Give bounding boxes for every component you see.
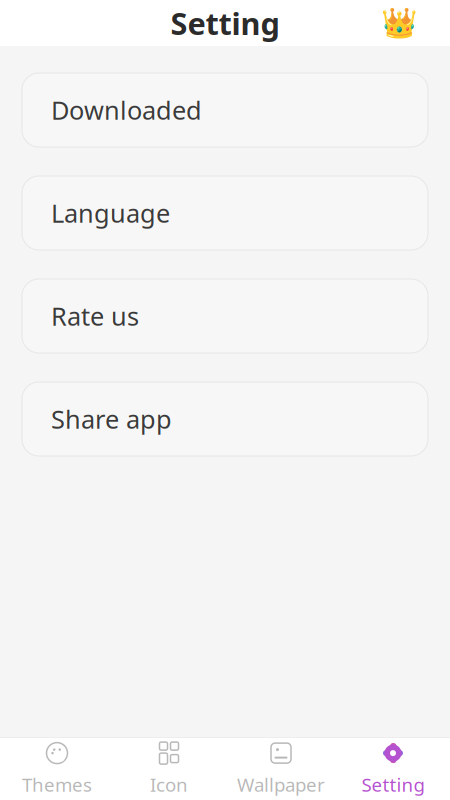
- button[interactable]: Themes: [1, 738, 113, 800]
- staticText: Setting: [361, 772, 424, 797]
- button[interactable]: Wallpaper: [225, 738, 337, 800]
- staticText: Share app: [51, 402, 172, 436]
- button[interactable]: Icon: [113, 738, 225, 800]
- button[interactable]: Share app: [22, 382, 428, 456]
- staticText: Icon: [150, 772, 188, 797]
- staticText: Rate us: [51, 299, 139, 333]
- staticText: Wallpaper: [237, 772, 325, 797]
- staticText: Language: [51, 196, 170, 230]
- staticText: Setting: [170, 3, 279, 43]
- staticText: Downloaded: [51, 93, 202, 127]
- staticText: 👑: [380, 6, 417, 40]
- button[interactable]: Premium: [376, 0, 422, 46]
- button[interactable]: Setting: [337, 738, 449, 800]
- button[interactable]: Rate us: [22, 279, 428, 353]
- staticText: Themes: [22, 772, 92, 797]
- button[interactable]: Downloaded: [22, 73, 428, 147]
- button[interactable]: Language: [22, 176, 428, 250]
